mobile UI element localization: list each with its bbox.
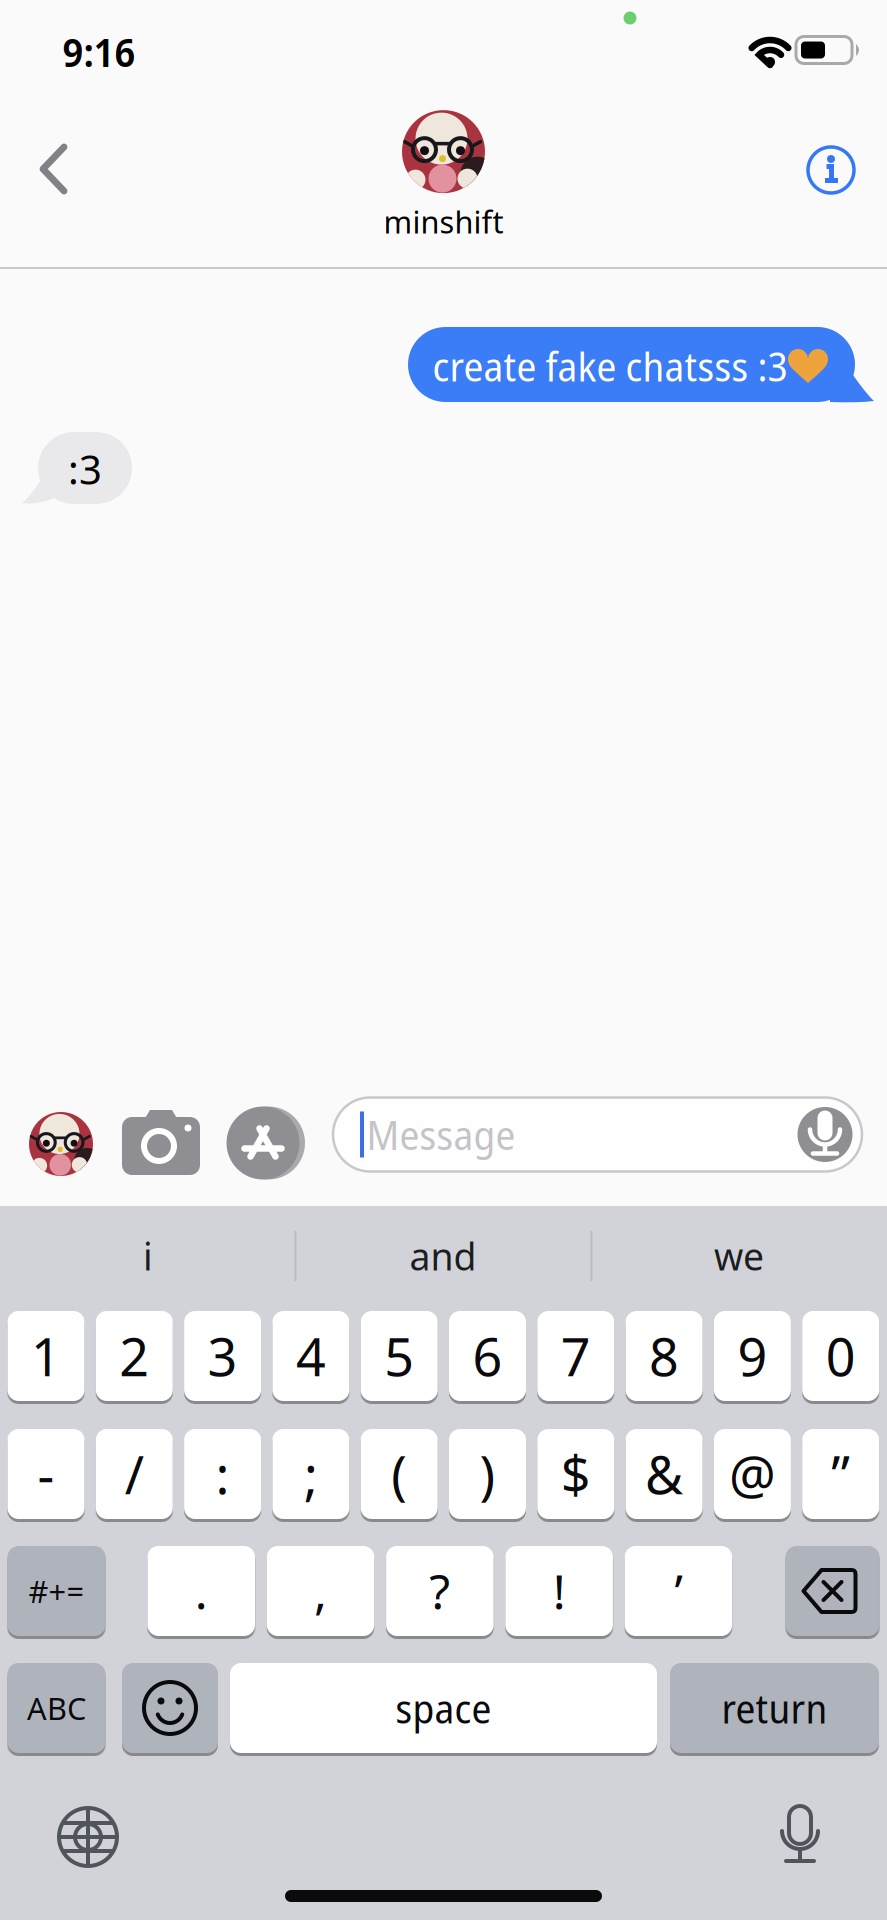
staticText: 9:16 — [62, 26, 135, 78]
staticText: ( — [391, 1439, 407, 1509]
staticText: ’ — [674, 1559, 682, 1623]
button[interactable]: 7 — [537, 1311, 614, 1401]
button[interactable]: 2 — [96, 1311, 173, 1401]
button[interactable]: 6 — [449, 1311, 526, 1401]
button[interactable]: ” — [802, 1429, 879, 1519]
staticText: 7 — [561, 1321, 591, 1391]
button[interactable]: : — [184, 1429, 261, 1519]
button[interactable]: , — [267, 1546, 374, 1636]
button[interactable]: Profile — [29, 1112, 93, 1176]
button[interactable]: 3 — [184, 1311, 261, 1401]
staticText: & — [645, 1439, 683, 1509]
staticText: :3 — [68, 442, 102, 495]
button[interactable]: ’ — [625, 1546, 732, 1636]
staticText: ! — [553, 1559, 566, 1623]
button[interactable]: @ — [714, 1429, 791, 1519]
staticText: Message — [366, 1107, 515, 1162]
button[interactable]: Next keyboard — [57, 1806, 119, 1868]
staticText: 2 — [119, 1321, 149, 1391]
button[interactable]: ; — [272, 1429, 349, 1519]
staticText: 5 — [384, 1321, 414, 1391]
button[interactable]: Emoji — [122, 1663, 218, 1753]
button[interactable]: & — [626, 1429, 703, 1519]
staticText: / — [125, 1439, 144, 1509]
staticText: 8 — [649, 1321, 679, 1391]
staticText: @ — [729, 1439, 776, 1509]
button[interactable]: Back — [40, 143, 70, 195]
staticText: 3 — [208, 1321, 238, 1391]
staticText: 6 — [472, 1321, 502, 1391]
staticText: minshift — [383, 201, 503, 242]
button[interactable]: ( — [361, 1429, 438, 1519]
button[interactable]: minshift — [363, 112, 523, 240]
staticText: ) — [479, 1439, 495, 1509]
button[interactable]: and — [303, 1216, 583, 1296]
button[interactable]: 0 — [802, 1311, 879, 1401]
staticText: we — [714, 1231, 764, 1281]
button[interactable]: i — [8, 1216, 288, 1296]
staticText: . — [195, 1559, 208, 1623]
button[interactable]: ABC — [7, 1663, 105, 1753]
staticText: $ — [561, 1439, 591, 1509]
button[interactable]: Dictation — [779, 1804, 821, 1866]
button[interactable]: #+= — [7, 1546, 105, 1636]
button[interactable]: Message — [333, 1097, 862, 1171]
button[interactable]: return — [670, 1663, 879, 1753]
button[interactable]: Info — [808, 147, 854, 193]
staticText: return — [721, 1681, 827, 1735]
staticText: - — [37, 1439, 54, 1509]
button[interactable]: Camera — [122, 1106, 200, 1176]
staticText: 0 — [826, 1321, 856, 1391]
staticText: ” — [831, 1439, 850, 1509]
button[interactable]: $ — [537, 1429, 614, 1519]
staticText: 1 — [31, 1321, 61, 1391]
button[interactable]: - — [7, 1429, 84, 1519]
button[interactable]: 8 — [626, 1311, 703, 1401]
button[interactable]: ? — [386, 1546, 494, 1636]
button[interactable]: ) — [449, 1429, 526, 1519]
button[interactable]: we — [599, 1216, 879, 1296]
button[interactable]: Apps — [226, 1106, 299, 1179]
staticText: , — [314, 1559, 327, 1623]
button[interactable]: / — [96, 1429, 173, 1519]
button[interactable]: 9 — [714, 1311, 791, 1401]
button[interactable]: ! — [505, 1546, 613, 1636]
staticText: 9 — [737, 1321, 767, 1391]
button[interactable]: . — [147, 1546, 255, 1636]
staticText: i — [143, 1231, 153, 1281]
button[interactable]: 5 — [361, 1311, 438, 1401]
staticText: create fake chatsss :3 — [432, 339, 787, 393]
staticText: space — [395, 1681, 491, 1735]
staticText: 4 — [296, 1321, 326, 1391]
staticText: ? — [429, 1559, 450, 1623]
button[interactable]: space — [230, 1663, 657, 1753]
staticText: and — [409, 1231, 476, 1281]
staticText: ; — [304, 1439, 318, 1509]
staticText: #+= — [28, 1571, 84, 1611]
staticText: : — [216, 1439, 230, 1509]
staticText: ABC — [27, 1688, 86, 1728]
button[interactable]: 4 — [272, 1311, 349, 1401]
button[interactable]: Delete — [785, 1546, 879, 1636]
button[interactable]: 1 — [7, 1311, 84, 1401]
